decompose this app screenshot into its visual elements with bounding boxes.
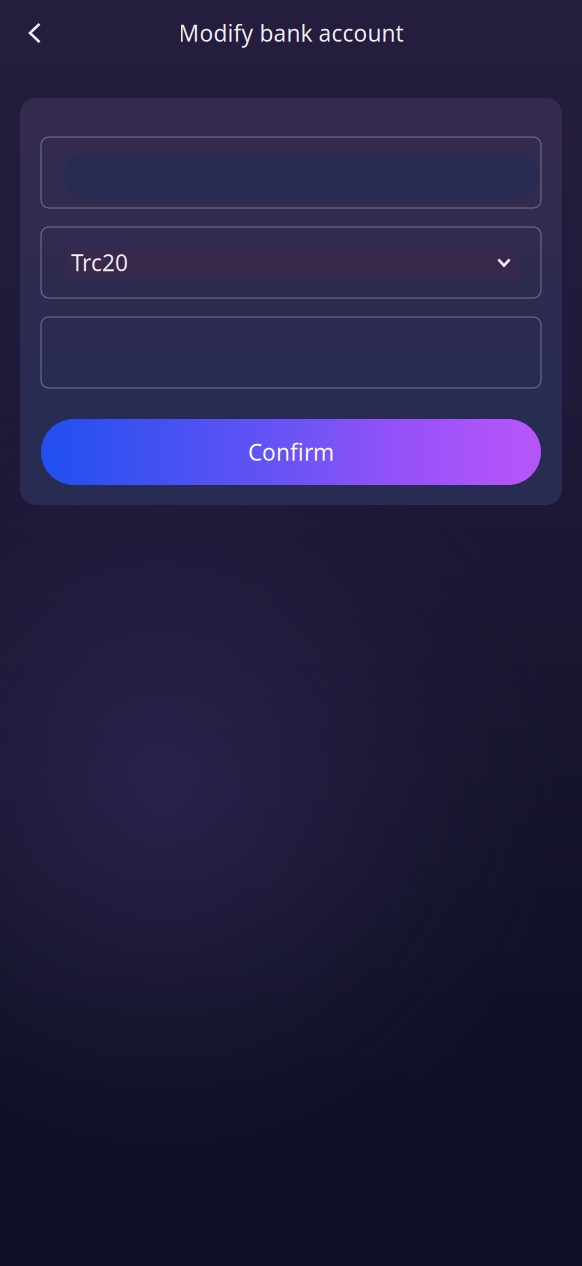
- staticText: Trc20: [71, 247, 128, 277]
- button[interactable]: Back: [16, 11, 54, 55]
- button[interactable]: Trc20: [41, 227, 541, 298]
- staticText: Confirm: [248, 437, 334, 467]
- staticText: Modify bank account: [178, 18, 403, 48]
- button[interactable]: Confirm: [41, 419, 541, 485]
